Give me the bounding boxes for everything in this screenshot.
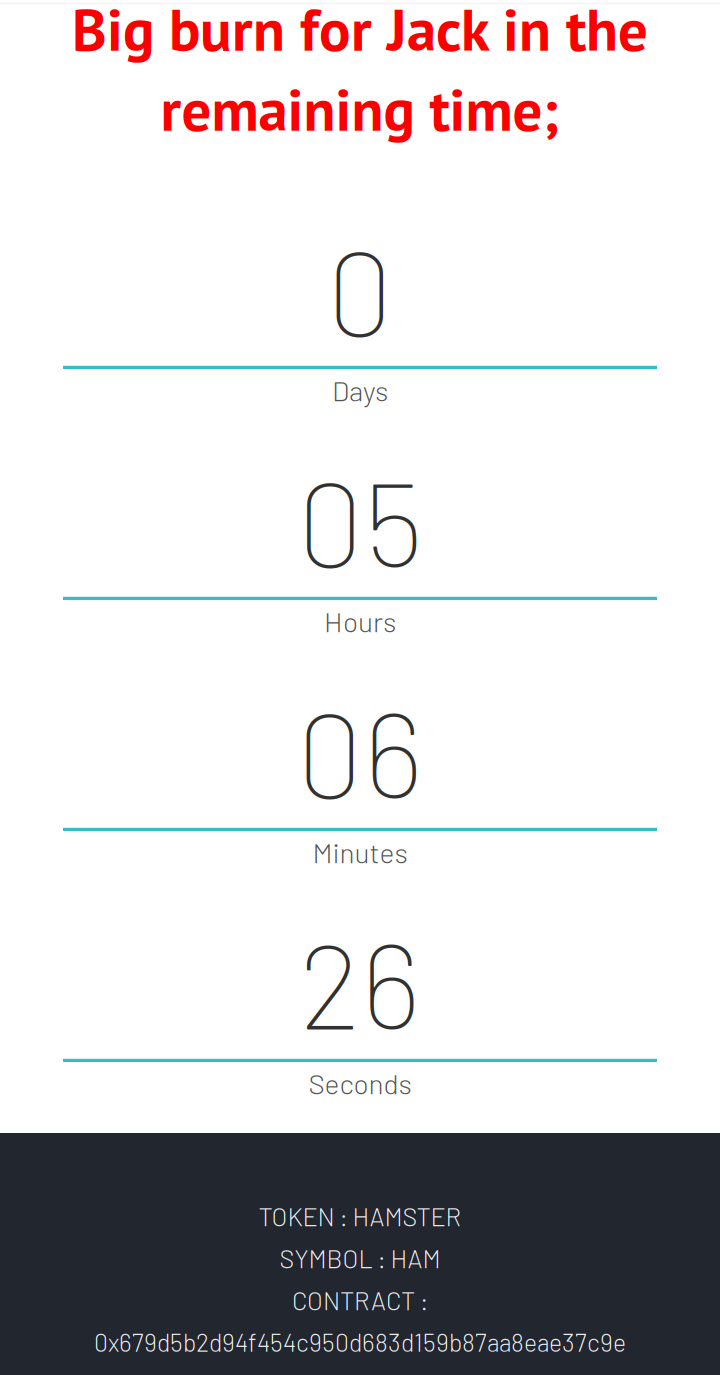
staticText: 26 xyxy=(299,911,421,1053)
staticText: remaining time; xyxy=(160,71,559,147)
staticText: Seconds xyxy=(308,1066,411,1100)
staticText: 05 xyxy=(297,449,423,591)
button[interactable]: 0x679d5b2d94f454c950d683d159b87aa8eae37c… xyxy=(75,1325,645,1359)
staticText: CONTRACT : xyxy=(292,1285,428,1315)
staticText: Hours xyxy=(324,604,396,638)
staticText: TOKEN : HAMSTER xyxy=(258,1201,461,1231)
staticText: Days xyxy=(332,373,388,407)
staticText: SYMBOL : HAM xyxy=(279,1243,440,1273)
staticText: 0x679d5b2d94f454c950d683d159b87aa8eae37c… xyxy=(94,1327,626,1357)
staticText: 06 xyxy=(296,680,423,822)
staticText: Minutes xyxy=(312,835,407,869)
staticText: Big burn for Jack in the xyxy=(72,0,648,67)
staticText: 0 xyxy=(326,218,393,360)
